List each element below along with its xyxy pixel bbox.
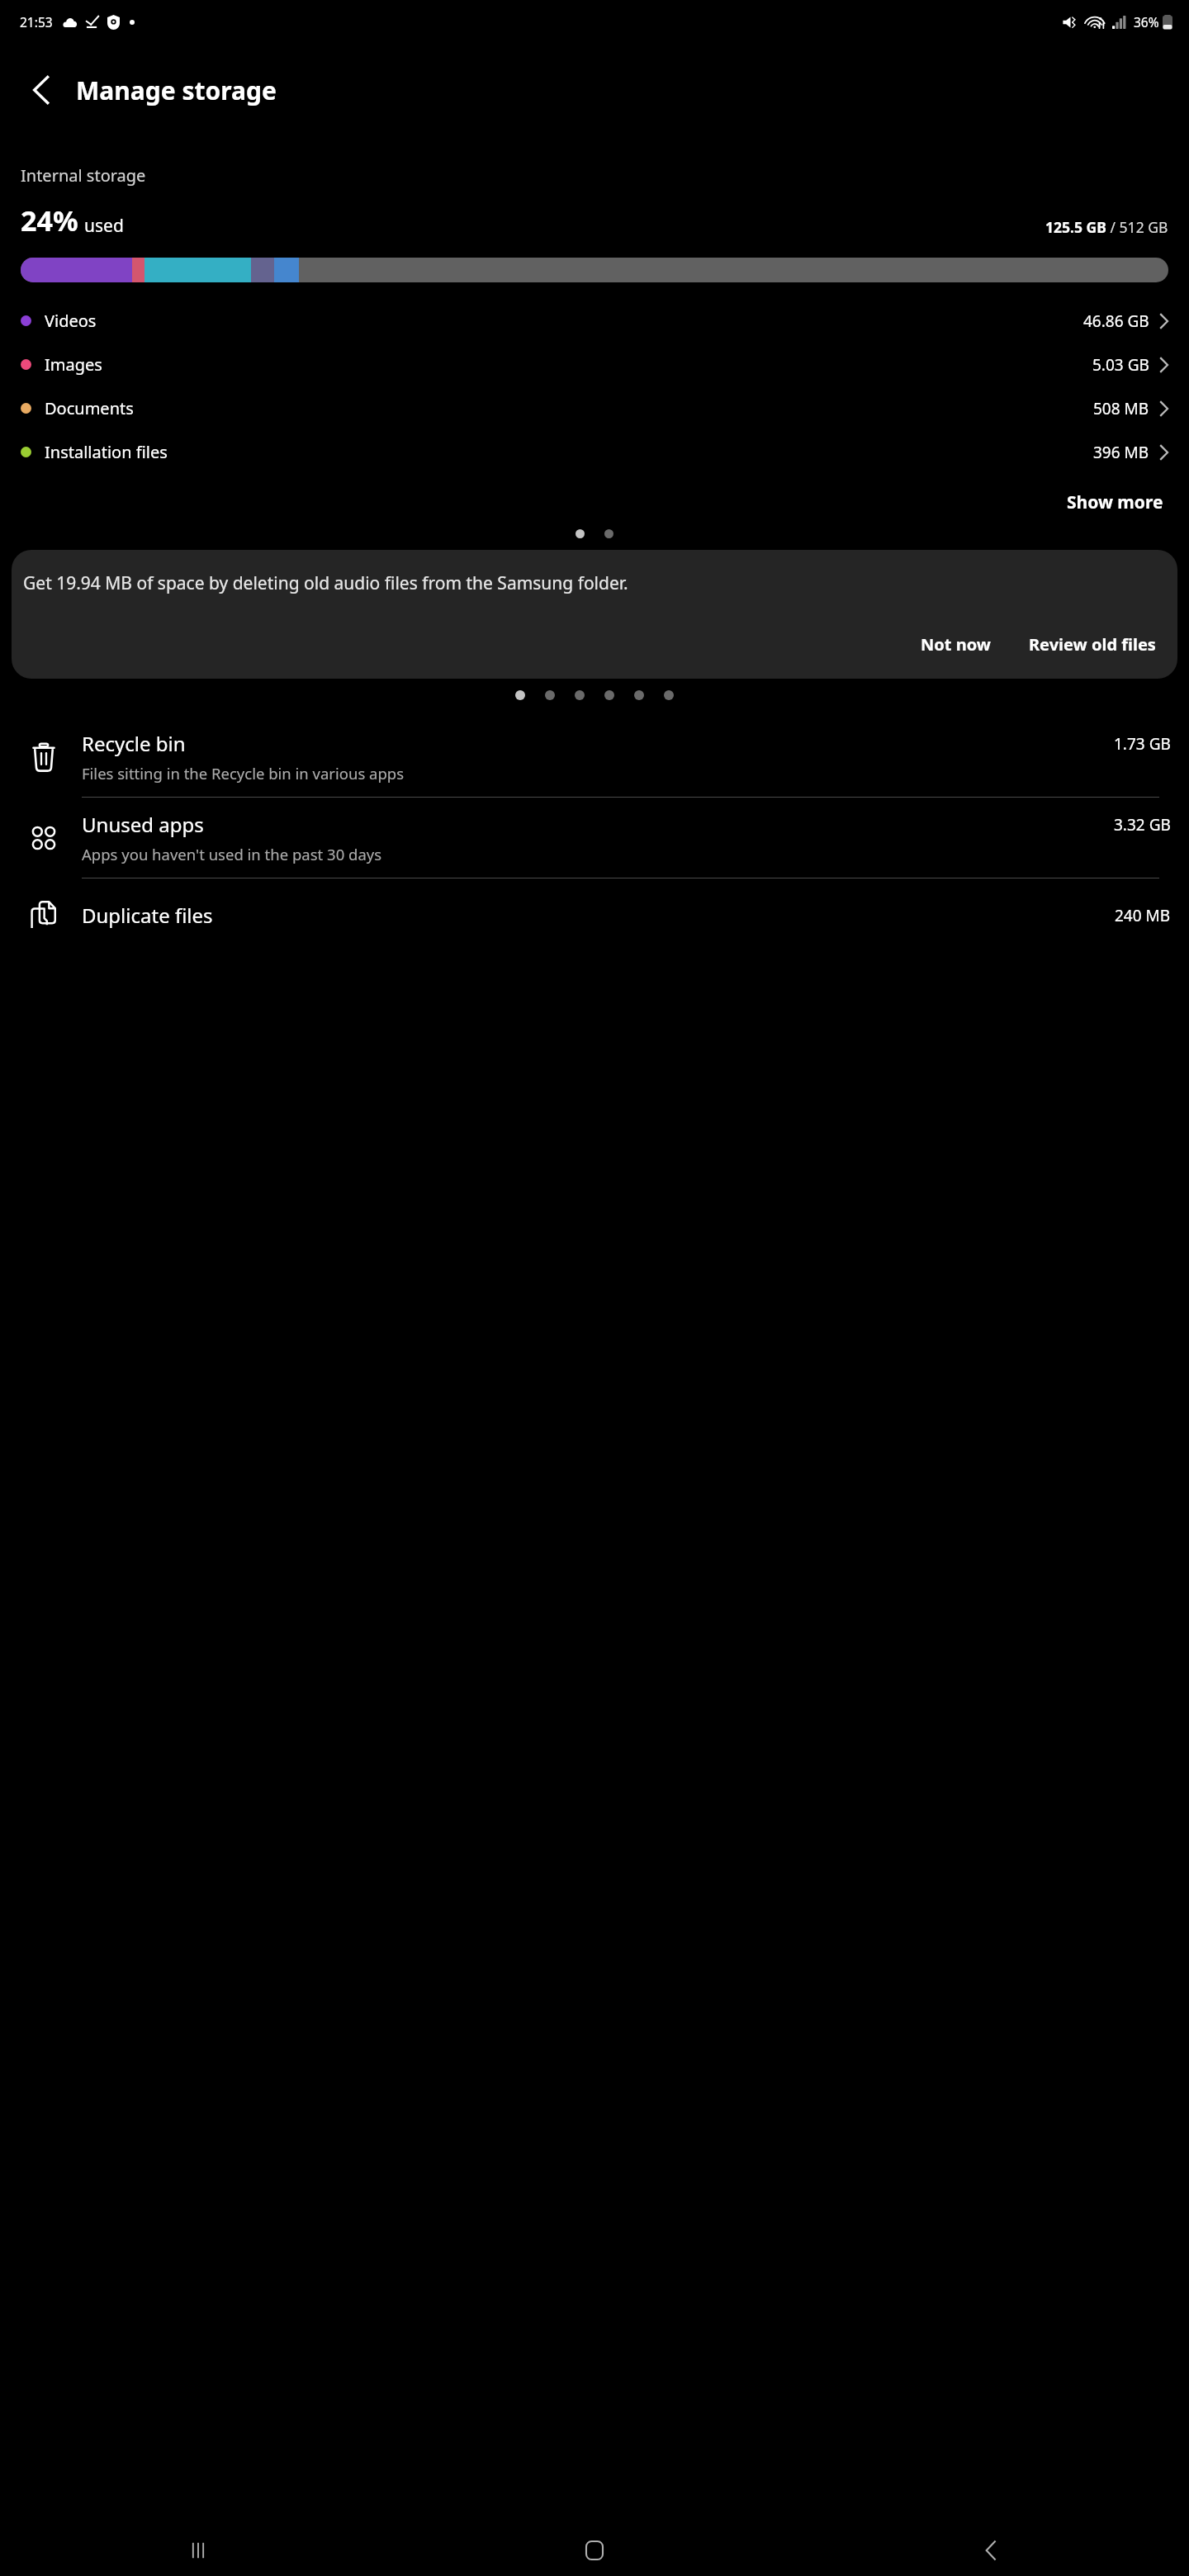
staticText: Show more — [1067, 490, 1163, 514]
staticText: 5.03 GB — [1092, 354, 1149, 376]
staticText: 508 MB — [1093, 398, 1149, 419]
staticText: 396 MB — [1093, 442, 1149, 463]
staticText: 21:53 — [20, 13, 53, 31]
staticText: 1.73 GB — [1114, 733, 1171, 755]
staticText: Images — [45, 353, 102, 376]
button[interactable]: Back — [793, 2525, 1189, 2576]
staticText: Manage storage — [76, 73, 277, 107]
staticText: Unused apps — [82, 811, 204, 838]
staticText: Internal storage — [21, 164, 146, 187]
staticText: Review old files — [1029, 633, 1156, 656]
button[interactable]: Not now — [911, 627, 1001, 662]
button[interactable]: Installation files — [0, 430, 1189, 474]
button[interactable]: Duplicate files — [0, 878, 1189, 951]
button[interactable]: Review old files — [1019, 627, 1166, 662]
button[interactable]: Get 19.94 MB of space by deleting old au… — [12, 550, 1177, 679]
staticText: Recycle bin — [82, 730, 186, 757]
staticText: Files sitting in the Recycle bin in vari… — [82, 763, 405, 784]
button[interactable]: Documents — [0, 386, 1189, 430]
staticText: Not now — [921, 633, 991, 656]
staticText: 125.5 GB — [1045, 217, 1106, 237]
staticText: used — [84, 214, 124, 238]
staticText: 46.86 GB — [1083, 310, 1149, 332]
button[interactable]: Show more — [1062, 484, 1168, 521]
button[interactable]: Recents — [0, 2525, 396, 2576]
staticText: Duplicate files — [82, 902, 213, 929]
staticText: Videos — [45, 310, 97, 332]
staticText: Documents — [45, 397, 134, 419]
button[interactable]: Images — [0, 343, 1189, 386]
button[interactable]: Back — [18, 67, 64, 113]
staticText: 36% — [1134, 13, 1159, 31]
staticText: / 512 GB — [1106, 217, 1168, 237]
staticText: Apps you haven't used in the past 30 day… — [82, 844, 382, 864]
button[interactable]: Home — [396, 2525, 793, 2576]
button[interactable]: Videos — [0, 299, 1189, 343]
staticText: 240 MB — [1115, 905, 1171, 926]
button[interactable]: Recycle bin — [0, 717, 1189, 798]
staticText: 3.32 GB — [1114, 814, 1171, 836]
button[interactable]: Unused apps — [0, 798, 1189, 878]
staticText: Get 19.94 MB of space by deleting old au… — [23, 571, 628, 595]
staticText: 24% — [21, 201, 78, 239]
staticText: Installation files — [45, 441, 168, 463]
